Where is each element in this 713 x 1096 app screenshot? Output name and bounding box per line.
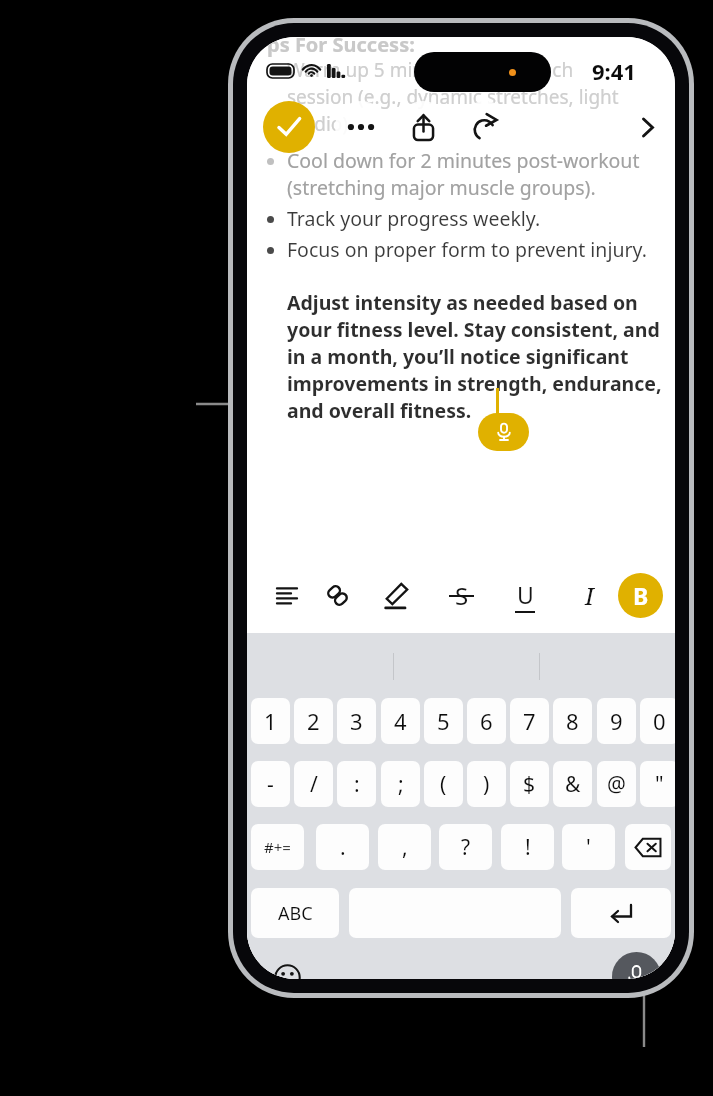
staticText: 9 (610, 706, 623, 736)
button[interactable]: Dictate (478, 413, 529, 451)
button[interactable]: ABC (251, 888, 339, 938)
button[interactable]: , (378, 824, 431, 870)
staticText: ABC (278, 901, 313, 926)
button[interactable]: Next (621, 101, 673, 153)
staticText: I (585, 579, 594, 612)
staticText: ! (525, 833, 531, 862)
button[interactable]: Redo (459, 101, 511, 153)
button[interactable]: Align (264, 569, 310, 622)
button[interactable]: #+= (251, 824, 304, 870)
staticText: 7 (523, 706, 536, 736)
button[interactable]: : (337, 761, 376, 807)
button[interactable]: More (335, 101, 387, 153)
staticText: " (655, 770, 664, 799)
button[interactable]: / (294, 761, 333, 807)
staticText: 8 (566, 706, 579, 736)
staticText: Focus on proper form to prevent injury. (287, 236, 647, 263)
staticText: 2 (307, 706, 320, 736)
staticText: - (267, 770, 274, 799)
button[interactable]: ; (381, 761, 420, 807)
button[interactable]: Strikethrough (438, 569, 484, 622)
staticText: B (633, 580, 649, 611)
staticText: 9:41 (592, 56, 636, 86)
button[interactable]: 9 (597, 698, 636, 744)
staticText: $ (523, 770, 536, 799)
button[interactable]: Return (571, 888, 671, 938)
button[interactable]: - (251, 761, 290, 807)
staticText: , (402, 833, 408, 862)
staticText: S (455, 579, 469, 612)
button[interactable]: ? (439, 824, 492, 870)
button[interactable]: @ (597, 761, 636, 807)
staticText: 0 (653, 706, 666, 736)
staticText: ( (440, 770, 447, 799)
button[interactable]: B (618, 573, 663, 618)
staticText: . (340, 833, 346, 862)
button[interactable]: Italic (566, 569, 612, 622)
staticText: 4 (394, 706, 407, 736)
staticText: 1 (264, 706, 277, 736)
staticText: @ (607, 770, 626, 799)
staticText: 6 (480, 706, 493, 736)
button[interactable]: 7 (510, 698, 549, 744)
button[interactable]: 8 (553, 698, 592, 744)
button[interactable]: Share (397, 101, 449, 153)
button[interactable]: Underline (502, 569, 548, 622)
staticText: ) (483, 770, 490, 799)
staticText: Warm up 5 minutes before each session (e… (287, 57, 619, 137)
button[interactable]: 1 (251, 698, 290, 744)
button[interactable]: 6 (467, 698, 506, 744)
staticText: Track your progress weekly. (287, 205, 541, 232)
button[interactable]: Dictation (612, 952, 661, 979)
staticText: ' (586, 833, 591, 862)
button[interactable]: ' (562, 824, 615, 870)
staticText: 3 (350, 706, 363, 736)
button[interactable]: 5 (424, 698, 463, 744)
staticText: Adjust intensity as needed based on your… (287, 289, 662, 424)
button[interactable]: 0 (640, 698, 675, 744)
button[interactable]: " (640, 761, 675, 807)
button[interactable]: Emoji (271, 961, 303, 979)
button[interactable]: 3 (337, 698, 376, 744)
staticText: ? (461, 833, 471, 862)
button[interactable]: Link (314, 569, 360, 622)
staticText: / (310, 770, 318, 799)
button[interactable]: & (553, 761, 592, 807)
staticText: Cool down for 2 minutes post-workout (st… (287, 147, 640, 201)
button[interactable]: ( (424, 761, 463, 807)
button[interactable]: 4 (381, 698, 420, 744)
button[interactable]: Backspace (625, 824, 671, 870)
staticText: 5 (437, 706, 450, 736)
staticText: : (354, 770, 360, 799)
button[interactable]: $ (510, 761, 549, 807)
button[interactable]: 2 (294, 698, 333, 744)
staticText: ps For Success: (267, 37, 415, 58)
button[interactable]: Highlight (374, 569, 420, 622)
button[interactable]: Done (263, 101, 315, 153)
button[interactable]: ! (501, 824, 554, 870)
staticText: #+= (264, 837, 291, 857)
staticText: U (517, 579, 534, 610)
staticText: & (565, 770, 581, 799)
button[interactable]: . (316, 824, 369, 870)
button[interactable]: ) (467, 761, 506, 807)
staticText: ; (398, 770, 404, 799)
